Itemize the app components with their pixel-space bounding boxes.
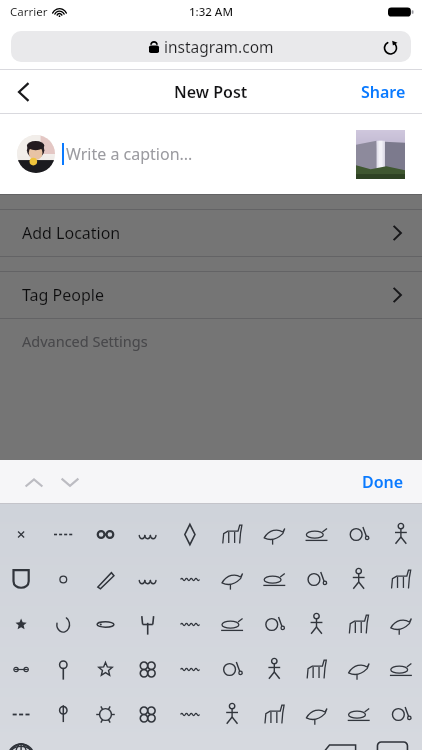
button[interactable]: Back (0, 70, 46, 113)
button[interactable]: Reload (377, 34, 403, 60)
button[interactable]: Done (344, 460, 422, 503)
button[interactable]: Key (128, 666, 170, 706)
button[interactable]: Key (338, 586, 380, 626)
button[interactable]: Add Location (0, 210, 422, 256)
button[interactable]: Tag People (0, 272, 422, 318)
button[interactable]: Key (86, 626, 128, 666)
button[interactable]: Key (86, 586, 128, 626)
button[interactable]: Key (254, 666, 296, 706)
button[interactable]: Change keyboard (0, 706, 50, 750)
button[interactable]: Key (170, 504, 212, 545)
button[interactable]: Key (128, 586, 170, 626)
button[interactable]: Return (376, 706, 422, 750)
button[interactable]: Key (338, 666, 380, 706)
button[interactable]: Key (86, 504, 128, 545)
button[interactable]: Key (86, 545, 128, 586)
button[interactable]: Share (345, 70, 422, 113)
button[interactable]: Key (338, 626, 380, 666)
button[interactable]: Key (338, 504, 380, 545)
button[interactable]: Key (170, 545, 212, 586)
button[interactable]: Key (43, 626, 86, 666)
button[interactable]: Previous field (18, 466, 50, 498)
button[interactable]: Key (254, 586, 296, 626)
button[interactable]: Key (128, 626, 170, 666)
staticText: Done (362, 471, 404, 493)
button[interactable]: Next field (54, 466, 86, 498)
staticText: Write a caption... (66, 143, 193, 165)
button[interactable]: Key (0, 666, 43, 706)
button[interactable]: Key (380, 504, 422, 545)
staticText: instagram.com (164, 36, 274, 57)
button[interactable]: Key (128, 545, 170, 586)
button[interactable]: Key (43, 586, 86, 626)
button[interactable]: Key (86, 666, 128, 706)
staticText: Add Location (22, 222, 121, 244)
button[interactable]: Key (212, 586, 254, 626)
button[interactable]: Key (0, 545, 43, 586)
button[interactable]: Key (296, 586, 338, 626)
staticText: Carrier (10, 4, 48, 20)
button[interactable]: Key (0, 504, 43, 545)
button[interactable]: Key (296, 545, 338, 586)
staticText: Share (361, 81, 406, 103)
button[interactable]: Key (212, 504, 254, 545)
button[interactable]: Key (296, 626, 338, 666)
button[interactable]: Key (170, 666, 212, 706)
staticText: New Post (174, 81, 248, 103)
button[interactable]: Key (212, 545, 254, 586)
button[interactable]: Key (338, 545, 380, 586)
button[interactable]: Key (380, 666, 422, 706)
button[interactable]: Key (212, 666, 254, 706)
button[interactable]: Key (0, 586, 43, 626)
button[interactable]: Key (380, 626, 422, 666)
button[interactable]: instagram.com (11, 31, 411, 62)
button[interactable]: Key (254, 504, 296, 545)
staticText: Tag People (22, 284, 104, 306)
button[interactable]: Key (254, 545, 296, 586)
button[interactable]: Key (380, 545, 422, 586)
staticText: Advanced Settings (22, 331, 148, 351)
button[interactable]: Key (128, 504, 170, 545)
button[interactable]: Backspace (330, 706, 376, 750)
button[interactable]: Key (296, 666, 338, 706)
button[interactable]: Key (43, 504, 86, 545)
button[interactable]: Key (0, 626, 43, 666)
button[interactable]: Key (170, 586, 212, 626)
button[interactable]: Advanced Settings (0, 319, 422, 363)
button[interactable]: Key (43, 666, 86, 706)
button[interactable]: Key (296, 504, 338, 545)
button[interactable]: Key (254, 626, 296, 666)
button[interactable]: Key (43, 545, 86, 586)
staticText: 1:32 AM (189, 4, 233, 20)
button[interactable]: Key (212, 626, 254, 666)
button[interactable]: Key (380, 586, 422, 626)
